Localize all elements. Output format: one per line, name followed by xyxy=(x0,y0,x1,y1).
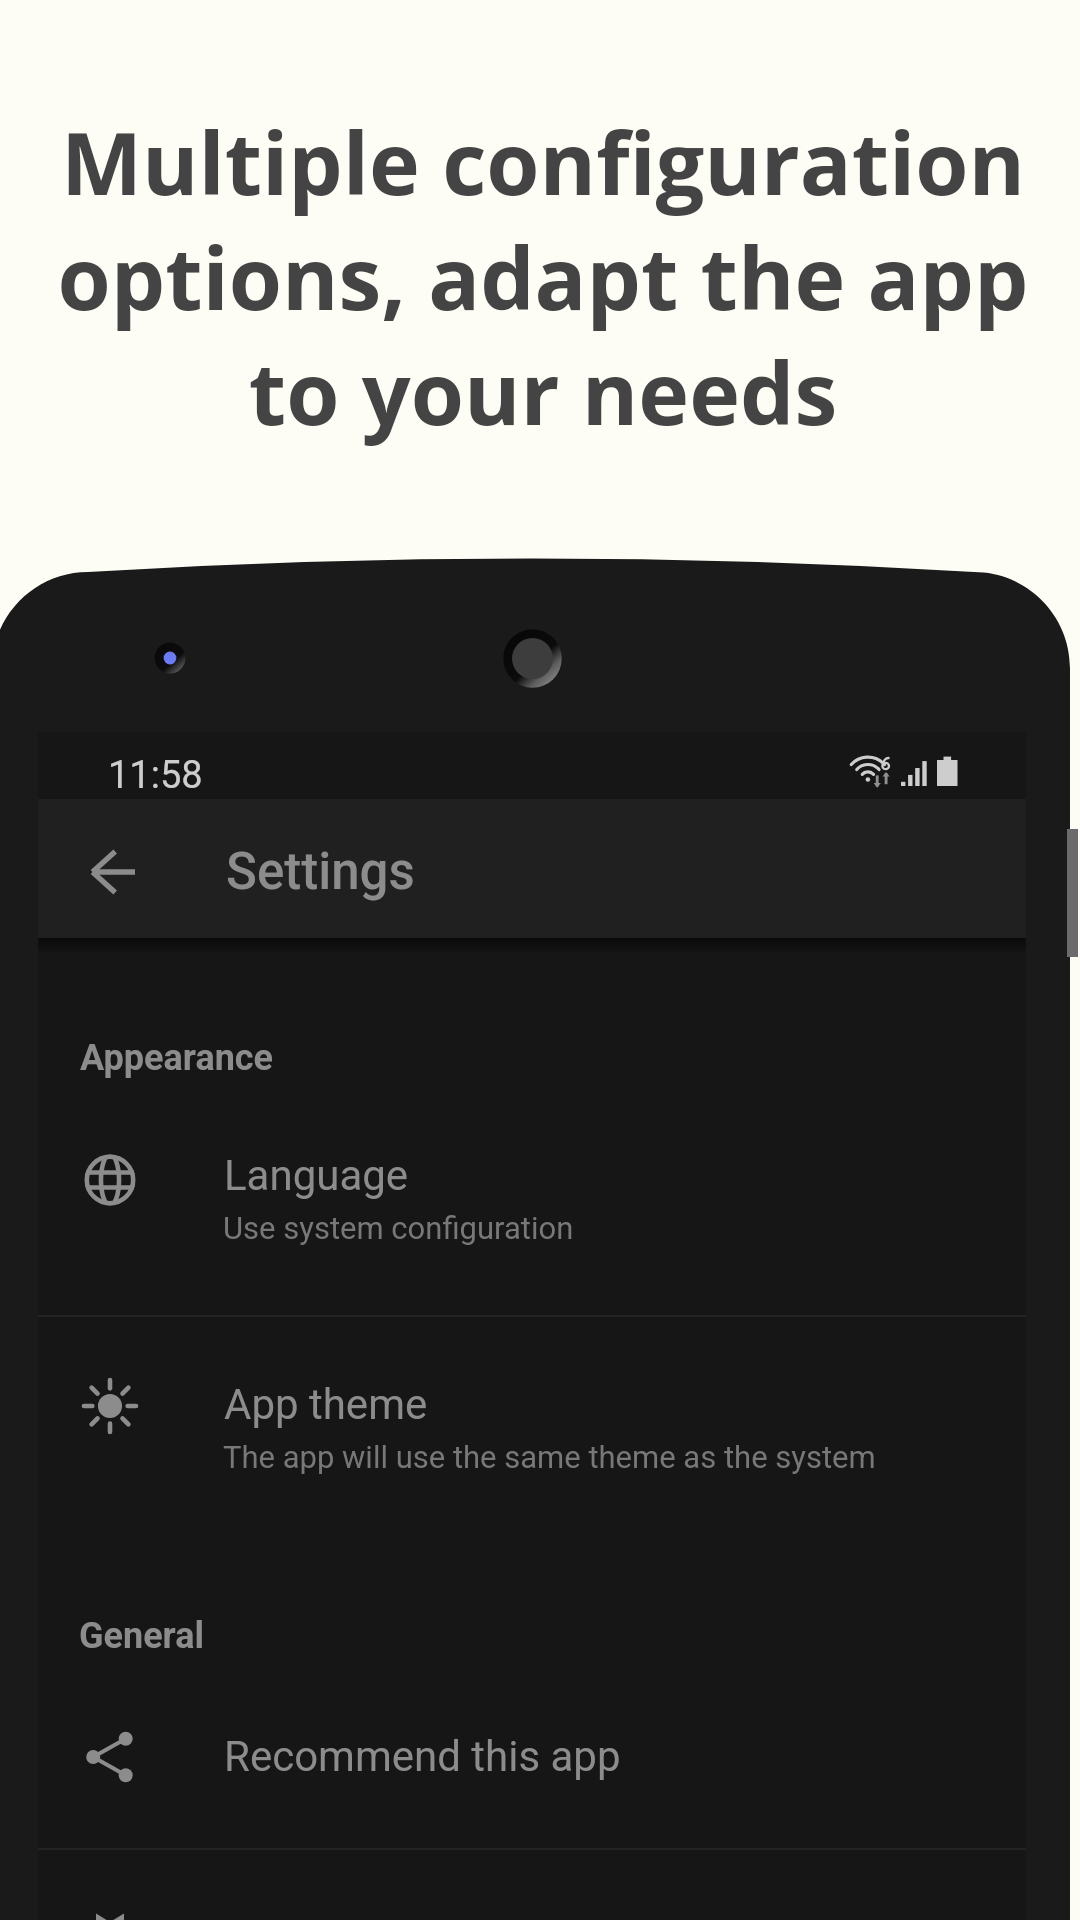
staticText: Language xyxy=(224,1151,409,1200)
staticText: The app will use the same theme as the s… xyxy=(223,1439,876,1475)
button[interactable]: General xyxy=(79,1615,204,1657)
button[interactable]: Back xyxy=(38,799,1026,938)
staticText: Recommend this app xyxy=(224,1732,621,1781)
button[interactable]: App theme xyxy=(38,1317,1026,1545)
staticText: Use system configuration xyxy=(223,1210,574,1246)
staticText: Multiple configuration options, adapt th… xyxy=(3,103,1080,450)
button[interactable]: Recommend this app xyxy=(38,1686,1026,1848)
staticText: Settings xyxy=(226,842,415,902)
button[interactable]: Back xyxy=(38,799,186,938)
staticText: App theme xyxy=(224,1380,428,1429)
button[interactable]: Language xyxy=(38,1108,1026,1315)
button[interactable]: Appearance xyxy=(80,1037,274,1079)
staticText: 11:58 xyxy=(108,753,203,798)
